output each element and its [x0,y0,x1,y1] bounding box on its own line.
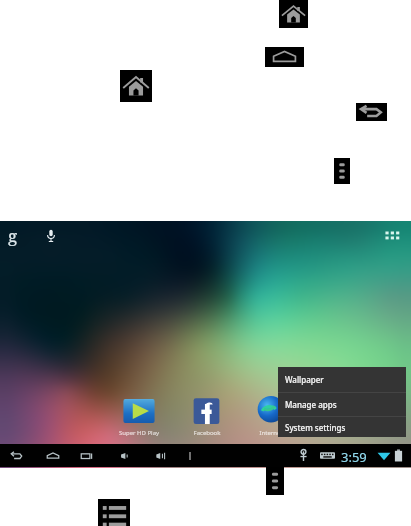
button[interactable]: Back [8,447,26,465]
button[interactable]: Home [44,447,62,465]
button[interactable]: Home [265,47,304,67]
button[interactable]: Wallpaper [278,367,406,392]
button[interactable]: More options [266,467,284,495]
staticText: System settings [285,422,346,433]
button[interactable]: Home [279,0,308,28]
button[interactable]: Back [356,103,387,121]
staticText: Facebook [180,429,234,437]
staticText: Manage apps [285,399,337,410]
button[interactable]: Volume down [116,447,134,465]
button[interactable]: System settings [278,417,406,437]
button[interactable]: Super HD Player [120,395,158,429]
staticText: Super HD Play [112,429,166,437]
staticText: Internet [244,429,298,437]
staticText: g [8,224,18,246]
button[interactable]: Manage apps [278,393,406,416]
button[interactable]: More options [334,158,350,184]
button[interactable]: Facebook [190,395,223,428]
button[interactable]: Internet [253,393,289,429]
button[interactable]: Apps [381,227,405,245]
button[interactable]: Recent apps [78,447,96,465]
button[interactable]: Menu [98,499,130,526]
button[interactable]: Home [120,70,152,102]
staticText: 3:59 [341,448,367,466]
button[interactable]: Google Search [2,223,64,245]
staticText: Wallpaper [285,374,324,385]
button[interactable]: Volume up [152,447,170,465]
